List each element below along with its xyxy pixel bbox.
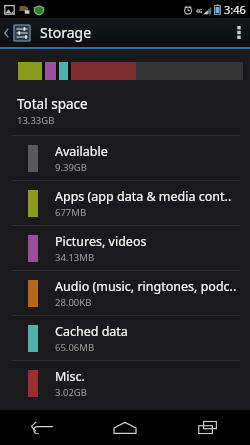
staticText: Available: [55, 143, 108, 160]
staticText: 677MB: [55, 206, 87, 219]
button[interactable]: Misc.: [0, 361, 250, 405]
button[interactable]: Apps (app data & media cont..: [0, 181, 250, 225]
staticText: Pictures, videos: [55, 233, 147, 250]
staticText: 28.00KB: [55, 296, 92, 309]
staticText: Apps (app data & media cont..: [55, 188, 232, 205]
staticText: Audio (music, ringtones, podc..: [55, 278, 237, 295]
staticText: Storage: [40, 23, 92, 42]
button[interactable]: Navigate up: [0, 18, 34, 47]
button[interactable]: Back: [14, 410, 70, 445]
button[interactable]: Home: [97, 410, 153, 445]
staticText: 13.33GB: [17, 114, 55, 127]
button[interactable]: Recent apps: [180, 410, 236, 445]
staticText: 4G: [196, 8, 203, 15]
button[interactable]: Audio (music, ringtones, podc..: [0, 271, 250, 315]
button[interactable]: Pictures, videos: [0, 226, 250, 270]
staticText: 65.06MB: [55, 341, 95, 354]
button[interactable]: Available: [0, 136, 250, 180]
button[interactable]: Cached data: [0, 316, 250, 360]
staticText: 3:46: [224, 2, 246, 17]
button[interactable]: More options: [228, 18, 250, 47]
staticText: 3.02GB: [55, 386, 87, 399]
staticText: Total space: [17, 95, 88, 113]
staticText: 9.39GB: [55, 161, 87, 174]
staticText: Cached data: [55, 323, 128, 340]
staticText: Misc.: [55, 368, 85, 385]
staticText: 34.13MB: [55, 251, 95, 264]
